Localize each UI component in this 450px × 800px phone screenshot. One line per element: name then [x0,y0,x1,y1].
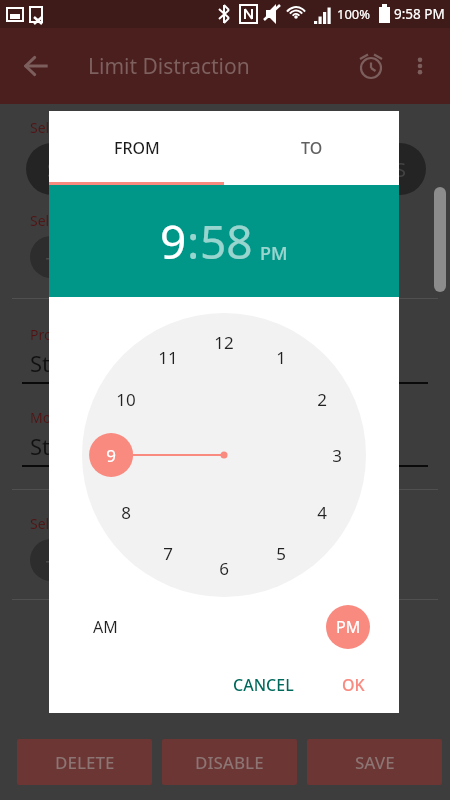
button[interactable]: S [142,143,194,195]
staticText: PM [336,616,361,638]
staticText: 6 [219,557,229,580]
staticText: DISABLE [195,751,264,774]
staticText: S [105,156,116,183]
button[interactable]: 10 [111,384,141,414]
staticText: DELETE [55,751,115,774]
button[interactable]: 5 [266,538,296,568]
staticText: + [45,242,58,272]
button[interactable]: 12 [209,327,239,357]
button[interactable]: 1 [266,342,296,372]
button[interactable]: 6 [209,553,239,583]
button[interactable]: PM [326,605,370,649]
button[interactable]: DISABLE [162,739,297,785]
button[interactable]: FROM [49,111,224,185]
staticText: SAVE [355,751,395,774]
staticText: 9 [106,444,116,467]
staticText: Profile Name [30,325,116,344]
staticText: S [163,156,174,183]
staticText: 10 [116,388,136,411]
staticText: 5 [276,542,286,565]
button[interactable]: S [258,143,310,195]
staticText: 4 [317,501,327,524]
staticText: Mode [30,408,68,427]
button[interactable]: 7 [153,538,183,568]
staticText: OK [342,674,365,696]
button[interactable]: OK [330,665,377,705]
staticText: PM [260,241,288,266]
button[interactable]: 3 [322,440,352,470]
staticText: 8 [121,501,131,524]
button[interactable]: + [30,236,72,278]
button[interactable]: S [316,143,368,195]
button[interactable]: TO [224,111,399,185]
button[interactable]: 9 [160,210,187,273]
staticText: Select Days [30,118,105,137]
button[interactable]: AM [83,605,127,649]
staticText: 3 [332,444,342,467]
staticText: S [47,156,58,183]
button[interactable]: 2 [307,384,337,414]
button[interactable]: More options [398,44,442,88]
staticText: 100% [337,5,371,23]
staticText: FROM [114,137,160,159]
button[interactable]: Back [14,44,58,88]
button[interactable]: CANCEL [221,665,306,705]
button[interactable]: 8 [111,497,141,527]
button[interactable]: Alarm [348,43,394,89]
staticText: Strict [30,431,84,461]
button[interactable]: S [84,143,136,195]
button[interactable]: 9 [96,440,126,470]
staticText: 2 [317,388,327,411]
staticText: TO [301,137,323,159]
staticText: 11 [158,346,178,369]
staticText: Study [30,348,89,378]
staticText: 9:58 PM [394,5,445,23]
staticText: Limit Distraction [88,52,250,81]
button[interactable]: S [200,143,252,195]
staticText: 7 [163,542,173,565]
staticText: S [395,156,406,183]
staticText: Select Apps [30,211,106,230]
staticText: S [221,156,232,183]
button[interactable]: 4 [307,497,337,527]
staticText: + [45,545,58,575]
staticText: 12 [214,331,234,354]
button[interactable]: 58 [200,210,253,273]
staticText: AM [93,616,118,638]
button[interactable]: S [26,143,78,195]
staticText: Select Time [30,514,105,533]
button[interactable]: + [30,539,72,581]
staticText: CANCEL [233,674,294,696]
staticText: : [187,210,200,273]
button[interactable]: S [374,143,426,195]
button[interactable]: DELETE [17,739,152,785]
staticText: 1 [276,346,286,369]
button[interactable]: 11 [153,342,183,372]
button[interactable]: SAVE [307,739,442,785]
